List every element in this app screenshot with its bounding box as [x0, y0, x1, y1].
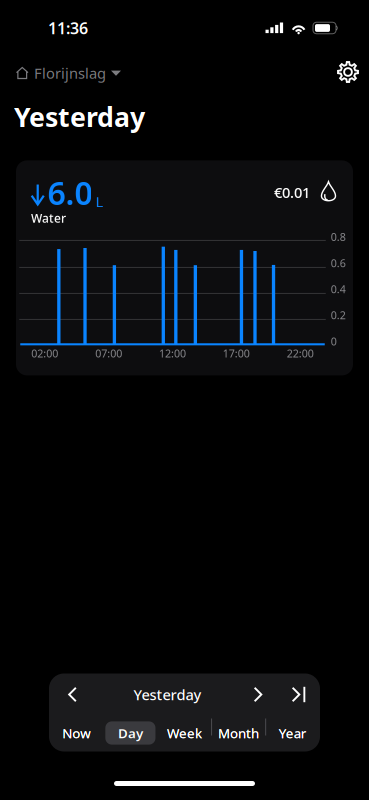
staticText: L	[95, 192, 103, 211]
staticText: 11:36	[48, 17, 88, 39]
button[interactable]: Year	[266, 718, 319, 747]
staticText: Year	[279, 724, 307, 742]
staticText: Day	[118, 724, 143, 742]
button[interactable]: Week	[158, 718, 211, 747]
button[interactable]: Next period	[239, 679, 277, 709]
staticText: 12:00	[159, 346, 186, 360]
staticText: Day	[118, 724, 143, 742]
button[interactable]: Florijnslag	[16, 57, 121, 89]
staticText: 0.4	[331, 282, 346, 296]
staticText: 17:00	[223, 346, 250, 360]
staticText: Week	[167, 724, 202, 742]
staticText: Water	[31, 210, 66, 226]
staticText: Now	[62, 724, 90, 742]
button[interactable]: Now	[50, 718, 103, 747]
staticText: 6.0	[47, 171, 92, 214]
staticText: 0.2	[331, 308, 346, 322]
staticText: Week	[167, 724, 202, 742]
staticText: €0.01	[274, 183, 310, 202]
staticText: Yesterday	[133, 685, 201, 704]
button[interactable]: Jump to latest	[277, 679, 320, 709]
button[interactable]: Day	[104, 718, 157, 747]
staticText: Now	[62, 724, 90, 742]
staticText: Yesterday	[14, 99, 145, 134]
button[interactable]: Month	[212, 718, 265, 747]
staticText: 0.6	[331, 256, 346, 270]
staticText: Month	[218, 724, 259, 742]
button[interactable]: Previous period	[49, 679, 96, 709]
staticText: 0	[331, 334, 337, 348]
staticText: 07:00	[95, 346, 122, 360]
staticText: Month	[218, 724, 259, 742]
staticText: Year	[279, 724, 307, 742]
staticText: Florijnslag	[34, 63, 106, 83]
staticText: 0.8	[331, 230, 346, 244]
staticText: 02:00	[31, 346, 58, 360]
button[interactable]: Settings	[333, 58, 363, 88]
staticText: 22:00	[287, 346, 314, 360]
